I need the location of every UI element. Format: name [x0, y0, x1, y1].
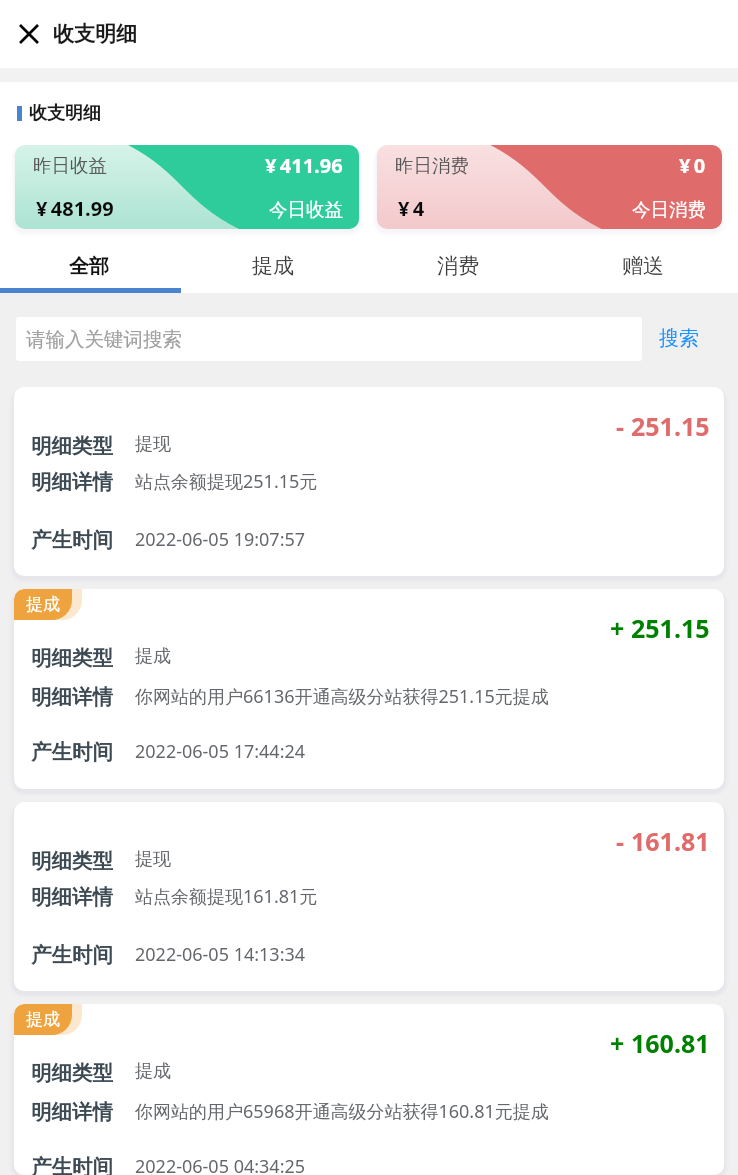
staticText: 站点余额提现161.81元	[135, 884, 318, 909]
staticText: 产生时间	[31, 1154, 113, 1175]
staticText: +	[610, 1026, 625, 1060]
button[interactable]: 昨日消费	[377, 145, 722, 229]
staticText: 赠送	[622, 253, 664, 279]
staticText: 提成	[26, 1009, 60, 1030]
staticText: 明细类型	[31, 848, 113, 874]
staticText: 收支明细	[53, 21, 137, 47]
button[interactable]: 消费	[365, 240, 550, 292]
staticText: 全部	[69, 254, 109, 279]
staticText: +	[610, 611, 625, 645]
button[interactable]: -	[14, 387, 724, 576]
staticText: 161.81	[631, 824, 710, 858]
button[interactable]: Close	[6, 11, 52, 57]
staticText: 昨日收益	[33, 154, 107, 177]
button[interactable]: 搜索	[642, 316, 716, 361]
staticText: ¥ 0	[679, 152, 706, 179]
staticText: 明细类型	[31, 645, 113, 671]
staticText: 你网站的用户65968开通高级分站获得160.81元提成	[135, 1099, 549, 1124]
staticText: -	[616, 409, 625, 443]
staticText: 2022-06-05 04:34:25	[135, 1154, 306, 1175]
staticText: 产生时间	[31, 739, 113, 765]
button[interactable]: +	[14, 589, 724, 789]
staticText: 产生时间	[31, 942, 113, 968]
staticText: 明细详情	[31, 469, 113, 495]
staticText: 2022-06-05 19:07:57	[135, 527, 306, 552]
staticText: 提成	[252, 253, 294, 279]
staticText: 明细详情	[31, 1099, 113, 1125]
staticText: 明细类型	[31, 1060, 113, 1086]
staticText: 明细类型	[31, 433, 113, 459]
button[interactable]: 全部	[0, 240, 181, 292]
staticText: 明细详情	[31, 684, 113, 710]
staticText: 160.81	[631, 1026, 710, 1060]
button[interactable]: +	[14, 1004, 724, 1175]
button[interactable]: 请输入关键词搜索	[16, 317, 642, 361]
staticText: 产生时间	[31, 527, 113, 553]
staticText: 2022-06-05 14:13:34	[135, 942, 306, 967]
button[interactable]: -	[14, 802, 724, 991]
staticText: 251.15	[631, 611, 710, 645]
staticText: 昨日消费	[395, 154, 469, 177]
button[interactable]: 赠送	[550, 240, 735, 292]
staticText: 提成	[26, 594, 60, 615]
staticText: 请输入关键词搜索	[26, 327, 182, 352]
button[interactable]: 提成	[181, 240, 365, 292]
staticText: 站点余额提现251.15元	[135, 469, 318, 494]
staticText: ¥ 411.96	[265, 152, 343, 179]
staticText: 收支明细	[29, 102, 101, 125]
staticText: 消费	[437, 253, 479, 279]
staticText: ¥ 4	[398, 195, 425, 222]
staticText: 提现	[135, 433, 171, 456]
staticText: ¥ 481.99	[36, 195, 114, 222]
staticText: 今日消费	[632, 198, 706, 221]
button[interactable]: 昨日收益	[15, 145, 359, 229]
staticText: 今日收益	[269, 198, 343, 221]
staticText: 提现	[135, 848, 171, 871]
staticText: 提成	[135, 1060, 171, 1083]
staticText: 明细详情	[31, 884, 113, 910]
staticText: 251.15	[631, 409, 710, 443]
staticText: -	[616, 824, 625, 858]
staticText: 搜索	[659, 326, 699, 351]
staticText: 你网站的用户66136开通高级分站获得251.15元提成	[135, 684, 549, 709]
staticText: 提成	[135, 645, 171, 668]
staticText: 2022-06-05 17:44:24	[135, 739, 306, 764]
